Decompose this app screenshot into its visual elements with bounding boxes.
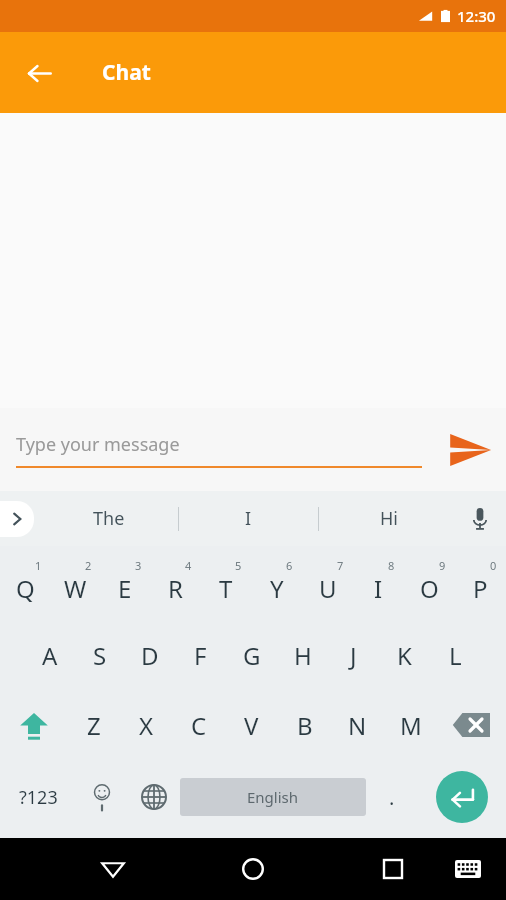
staticText: N — [348, 709, 367, 742]
button[interactable]: Q — [0, 550, 50, 620]
staticText: 2 — [85, 558, 92, 573]
button[interactable]: Y — [251, 550, 302, 620]
staticText: I — [245, 506, 252, 531]
staticText: 4 — [185, 558, 192, 573]
button[interactable]: Shift — [0, 690, 68, 760]
staticText: 5 — [235, 558, 242, 573]
button[interactable]: Home — [230, 846, 276, 892]
staticText: 0 — [490, 558, 497, 573]
button[interactable]: N — [331, 690, 384, 760]
staticText: A — [42, 639, 58, 672]
button[interactable]: I — [179, 491, 318, 546]
staticText: English — [247, 787, 299, 807]
staticText: U — [319, 572, 337, 605]
button[interactable]: Change language — [128, 760, 180, 834]
button[interactable]: Hi — [319, 491, 458, 546]
button[interactable]: R — [150, 550, 200, 620]
staticText: The — [93, 506, 125, 531]
button[interactable]: L — [430, 620, 481, 690]
staticText: O — [420, 572, 439, 605]
staticText: I — [374, 572, 383, 605]
button[interactable]: Send — [442, 422, 498, 478]
staticText: B — [297, 709, 313, 742]
button[interactable]: Back — [16, 50, 62, 96]
button[interactable]: E — [100, 550, 150, 620]
staticText: K — [397, 639, 412, 672]
staticText: 9 — [439, 558, 446, 573]
button[interactable]: O — [404, 550, 455, 620]
staticText: 6 — [286, 558, 293, 573]
staticText: Q — [16, 572, 35, 605]
staticText: J — [350, 639, 357, 672]
staticText: Hi — [380, 506, 398, 531]
staticText: 12:30 — [457, 6, 496, 26]
button[interactable]: M — [384, 690, 437, 760]
button[interactable]: Z — [68, 690, 120, 760]
staticText: R — [168, 572, 183, 605]
button[interactable]: K — [379, 620, 430, 690]
staticText: E — [118, 572, 132, 605]
staticText: P — [473, 572, 488, 605]
button[interactable]: S — [75, 620, 125, 690]
staticText: 1 — [35, 558, 42, 573]
button[interactable]: V — [225, 690, 278, 760]
button[interactable]: Recent apps — [370, 846, 416, 892]
button[interactable]: C — [172, 690, 225, 760]
staticText: ?123 — [19, 785, 58, 810]
button[interactable]: Expand suggestions — [0, 501, 34, 537]
button[interactable]: Emoji — [76, 760, 128, 834]
button[interactable]: Back — [90, 846, 136, 892]
staticText: Z — [87, 709, 101, 742]
staticText: 8 — [388, 558, 395, 573]
staticText: . — [389, 784, 395, 811]
button[interactable]: J — [328, 620, 379, 690]
staticText: 7 — [337, 558, 344, 573]
staticText: T — [219, 572, 233, 605]
staticText: 3 — [135, 558, 142, 573]
staticText: F — [194, 639, 207, 672]
button[interactable]: B — [278, 690, 331, 760]
staticText: V — [244, 709, 259, 742]
staticText: S — [93, 639, 107, 672]
button[interactable]: Enter — [418, 760, 506, 834]
staticText: Chat — [102, 58, 151, 87]
button[interactable]: Hide keyboard — [448, 849, 488, 889]
staticText: Y — [270, 572, 284, 605]
staticText: X — [139, 709, 154, 742]
staticText: L — [449, 639, 462, 672]
staticText: G — [243, 639, 261, 672]
button[interactable]: G — [226, 620, 277, 690]
button[interactable]: H — [277, 620, 328, 690]
button[interactable]: . — [366, 760, 418, 834]
staticText: D — [141, 639, 159, 672]
button[interactable]: A — [25, 620, 75, 690]
staticText: Type your message — [16, 432, 180, 457]
button[interactable]: The — [40, 491, 178, 546]
button[interactable]: English — [180, 778, 366, 816]
button[interactable]: X — [120, 690, 172, 760]
button[interactable]: W — [50, 550, 100, 620]
button[interactable]: T — [200, 550, 251, 620]
staticText: M — [400, 709, 422, 742]
staticText: H — [294, 639, 312, 672]
button[interactable]: U — [302, 550, 353, 620]
button[interactable]: I — [353, 550, 404, 620]
button[interactable]: P — [455, 550, 506, 620]
button[interactable]: F — [175, 620, 226, 690]
staticText: W — [64, 572, 87, 605]
staticText: C — [191, 709, 207, 742]
button[interactable]: D — [125, 620, 175, 690]
button[interactable]: Voice input — [458, 497, 502, 541]
button[interactable]: ?123 — [0, 760, 76, 834]
button[interactable]: Backspace — [437, 690, 506, 760]
